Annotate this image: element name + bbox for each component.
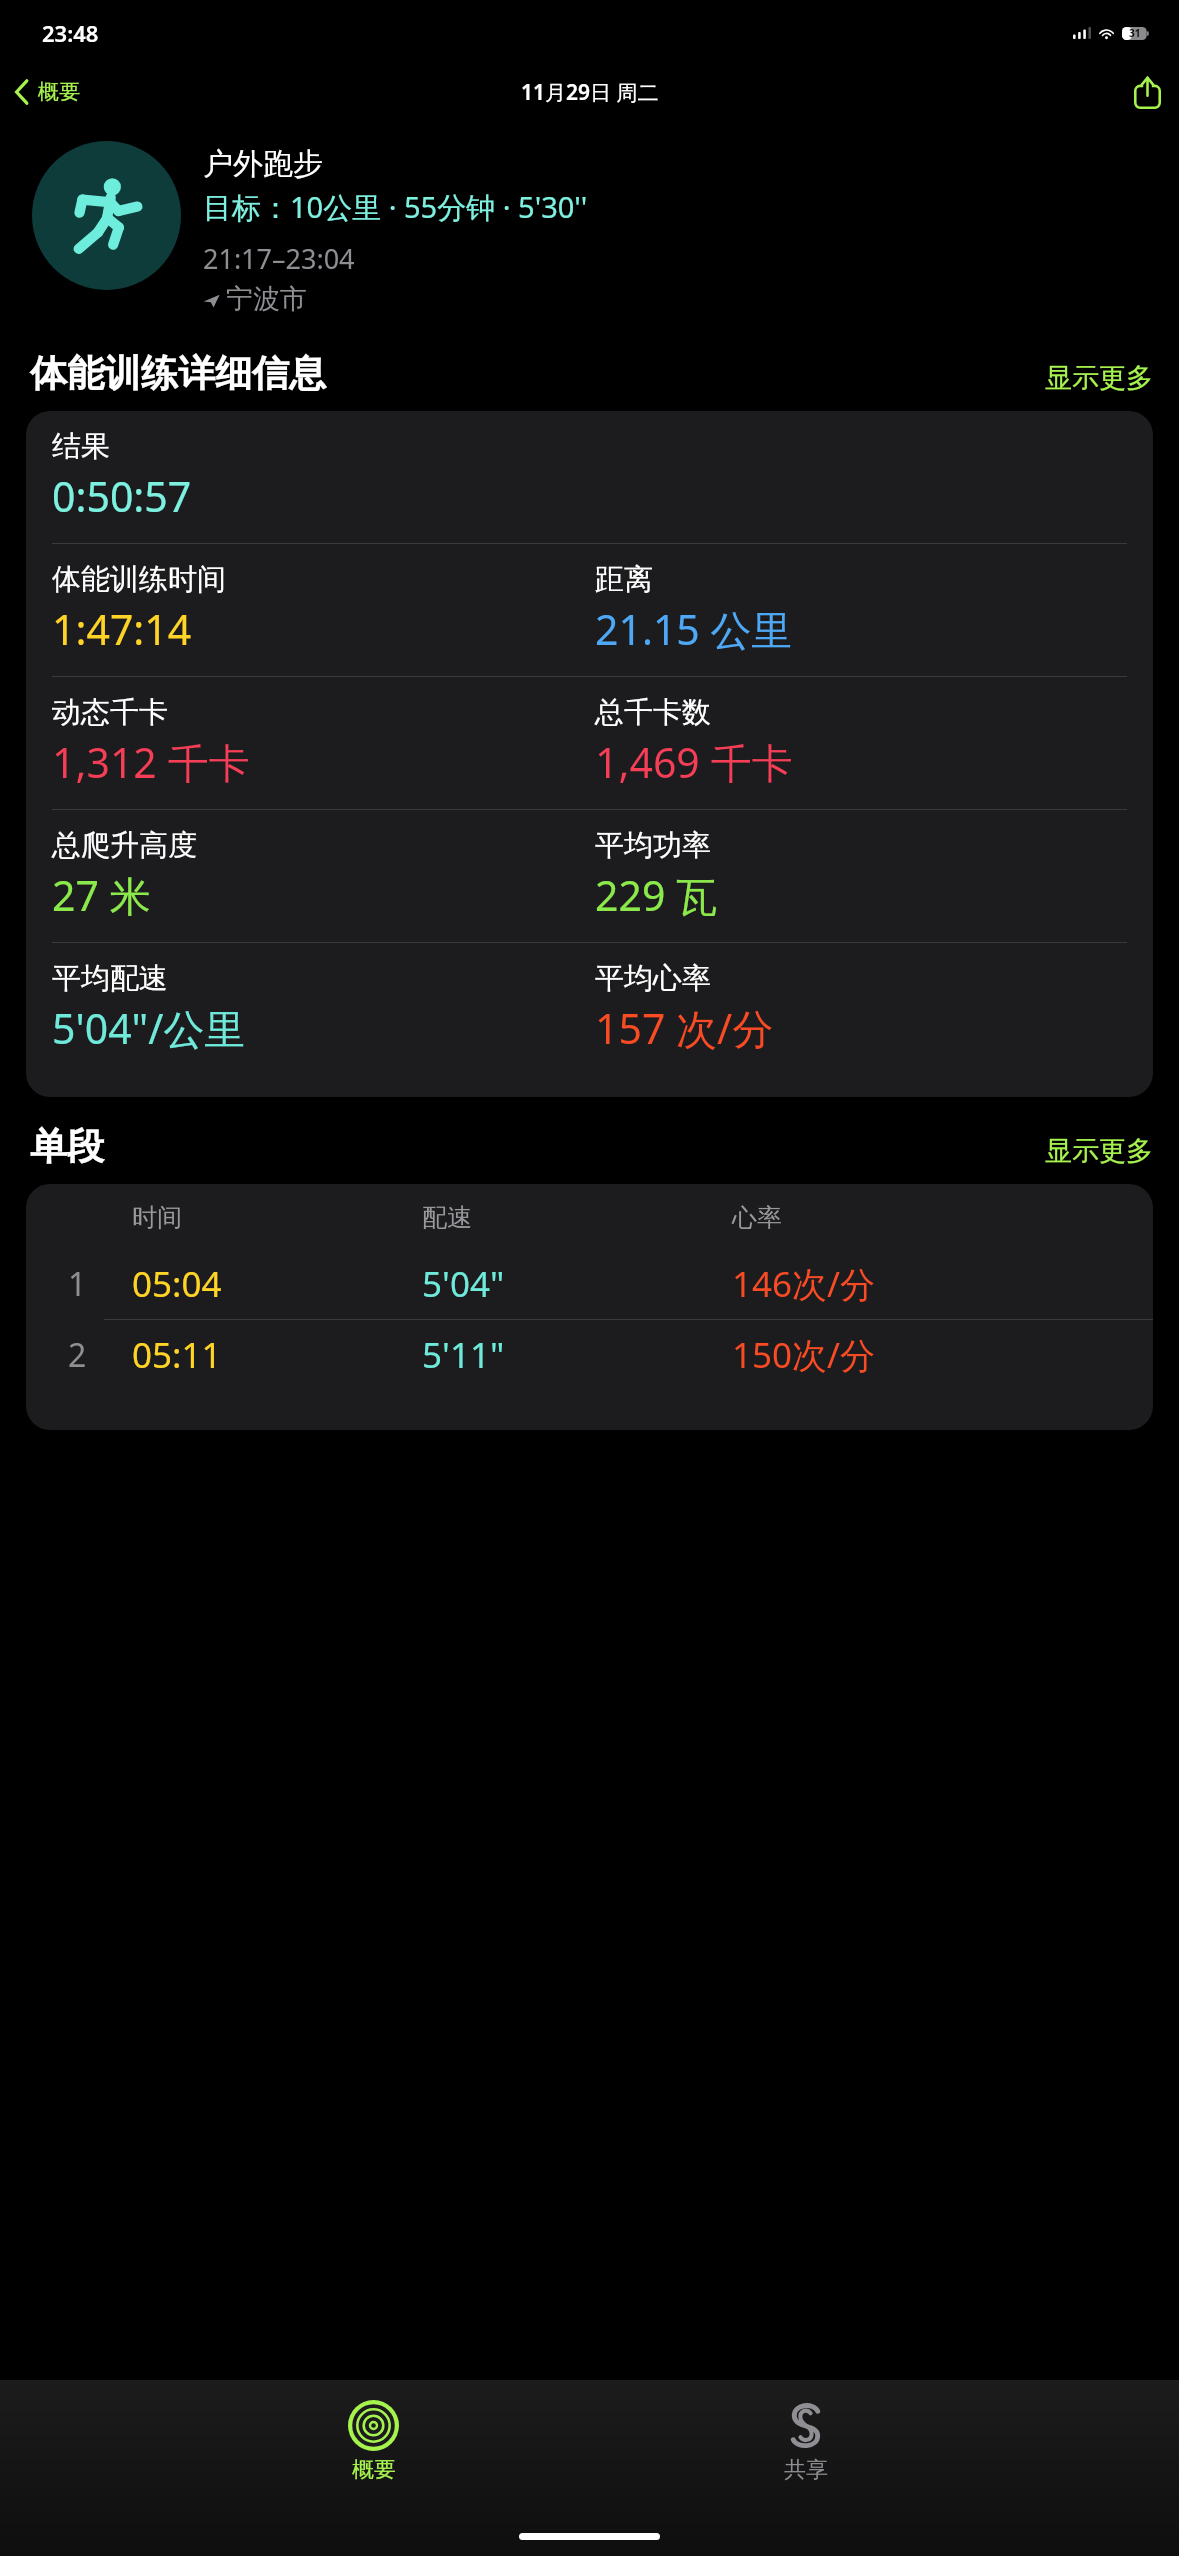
staticText: 5'11": [422, 1331, 732, 1379]
button[interactable]: 概要: [314, 2394, 433, 2490]
staticText: 150次/分: [732, 1331, 876, 1379]
staticText: 1,469 千卡: [595, 734, 793, 790]
staticText: 146次/分: [732, 1260, 876, 1308]
staticText: 体能训练时间: [52, 561, 226, 598]
button[interactable]: 概要: [0, 72, 92, 112]
staticText: 时间: [132, 1202, 422, 1233]
staticText: 平均功率: [595, 827, 711, 864]
staticText: 31: [1129, 26, 1141, 40]
staticText: 显示更多: [1045, 361, 1153, 395]
staticText: 心率: [732, 1202, 782, 1233]
button[interactable]: 分享: [1116, 68, 1179, 117]
button[interactable]: 共享: [746, 2394, 865, 2490]
staticText: 2: [68, 1333, 132, 1377]
button[interactable]: 显示更多: [1035, 1134, 1153, 1170]
staticText: 1: [68, 1262, 132, 1306]
button[interactable]: 显示更多: [1035, 361, 1153, 397]
staticText: 平均配速: [52, 960, 168, 997]
staticText: 05:04: [132, 1260, 422, 1308]
staticText: 05:11: [132, 1331, 422, 1379]
staticText: 显示更多: [1045, 1134, 1153, 1168]
staticText: 21.15 公里: [595, 601, 793, 657]
staticText: 1,312 千卡: [52, 734, 250, 790]
staticText: 体能训练详细信息: [30, 350, 1035, 397]
staticText: 概要: [352, 2456, 396, 2484]
staticText: 距离: [595, 561, 653, 598]
staticText: 23:48: [42, 18, 99, 48]
staticText: 0:50:57: [52, 468, 192, 524]
staticText: 11月29日 周二: [521, 78, 659, 107]
staticText: 总爬升高度: [52, 827, 197, 864]
staticText: 共享: [784, 2456, 828, 2484]
staticText: 单段: [30, 1123, 1035, 1170]
staticText: 概要: [38, 79, 80, 105]
staticText: 21:17–23:04: [203, 240, 355, 277]
staticText: 户外跑步: [203, 145, 323, 183]
button[interactable]: 1: [26, 1249, 1153, 1319]
staticText: 平均心率: [595, 960, 711, 997]
staticText: 宁波市: [226, 282, 307, 316]
staticText: 5'04": [422, 1260, 732, 1308]
staticText: 动态千卡: [52, 694, 168, 731]
staticText: 结果: [52, 428, 110, 465]
staticText: 157 次/分: [595, 1000, 774, 1056]
button[interactable]: 2: [26, 1320, 1153, 1390]
staticText: 总千卡数: [595, 694, 711, 731]
staticText: 27 米: [52, 867, 151, 923]
staticText: 5'04"/公里: [52, 1000, 246, 1056]
staticText: 229 瓦: [595, 867, 718, 923]
staticText: 目标：10公里 · 55分钟 · 5'30'': [203, 187, 588, 227]
staticText: 1:47:14: [52, 601, 192, 657]
staticText: 配速: [422, 1202, 732, 1233]
